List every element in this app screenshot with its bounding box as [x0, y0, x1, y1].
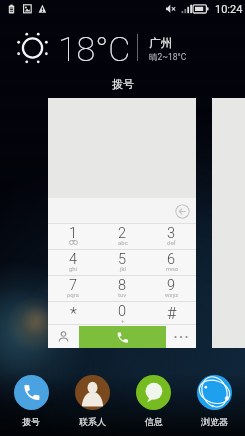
staticText: 拨号: [22, 416, 40, 427]
staticText: 4: [69, 251, 78, 268]
staticText: mno: [166, 265, 178, 272]
staticText: abc: [118, 239, 128, 246]
button[interactable]: 3: [147, 224, 196, 249]
staticText: 2: [118, 225, 127, 242]
button[interactable]: Call: [79, 326, 166, 348]
staticText: #: [167, 304, 177, 323]
button[interactable]: 4: [48, 250, 98, 275]
button[interactable]: 2: [98, 224, 147, 249]
button[interactable]: Contacts: [48, 325, 79, 348]
staticText: 1: [69, 225, 78, 242]
staticText: jkl: [120, 265, 126, 272]
staticText: 6: [167, 251, 176, 268]
staticText: 9: [167, 277, 176, 294]
button[interactable]: 0: [98, 302, 147, 327]
button[interactable]: *: [48, 302, 98, 327]
staticText: +: [121, 317, 125, 324]
staticText: 10:24: [215, 3, 243, 16]
button[interactable]: 9: [147, 276, 196, 301]
button[interactable]: More options: [166, 325, 196, 348]
staticText: 联系人: [79, 416, 106, 427]
button[interactable]: #: [147, 302, 196, 327]
staticText: pqrs: [67, 291, 79, 298]
staticText: ghi: [69, 265, 78, 272]
staticText: 8: [118, 277, 127, 294]
button[interactable]: Backspace: [175, 204, 190, 219]
button[interactable]: 6: [147, 250, 196, 275]
staticText: 7: [69, 277, 78, 294]
button[interactable]: 联系人: [62, 375, 123, 433]
button[interactable]: 拨号: [0, 375, 62, 433]
staticText: *: [70, 304, 77, 323]
staticText: 5: [118, 251, 127, 268]
staticText: def: [167, 239, 176, 246]
staticText: wxyz: [165, 291, 179, 298]
button[interactable]: 浏览器: [184, 375, 245, 433]
staticText: 18°C: [58, 29, 131, 69]
button[interactable]: 信息: [123, 375, 184, 433]
staticText: 信息: [145, 416, 163, 427]
staticText: 广州: [149, 36, 172, 50]
button[interactable]: 5: [98, 250, 147, 275]
staticText: tuv: [118, 291, 127, 298]
button[interactable]: 8: [98, 276, 147, 301]
staticText: 3: [167, 225, 176, 242]
staticText: 晴2~18°C: [149, 52, 187, 63]
staticText: 0: [118, 303, 127, 320]
staticText: 拨号: [112, 77, 134, 91]
button[interactable]: 1: [48, 224, 98, 249]
staticText: 浏览器: [201, 416, 228, 427]
button[interactable]: 7: [48, 276, 98, 301]
